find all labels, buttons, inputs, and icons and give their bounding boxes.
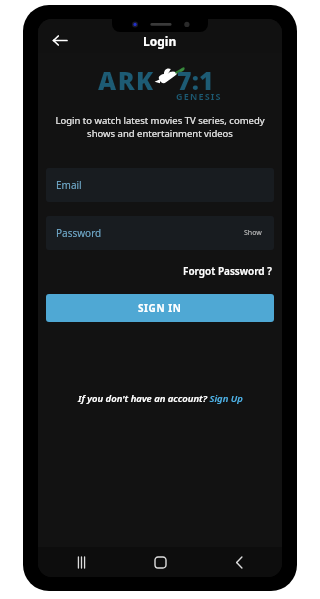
- button[interactable]: Back: [226, 549, 252, 575]
- button[interactable]: Home: [147, 549, 173, 575]
- button[interactable]: Password: [46, 216, 274, 250]
- button[interactable]: If you don't have an account? Sign Up: [74, 388, 247, 409]
- staticText: ARK: [98, 63, 155, 97]
- button[interactable]: Email: [46, 168, 274, 202]
- staticText: GENESIS: [176, 90, 222, 102]
- staticText: Email: [56, 178, 82, 192]
- staticText: Login to watch latest movies TV series, …: [50, 114, 270, 140]
- button[interactable]: Show: [242, 226, 264, 240]
- staticText: If you don't have an account? Sign Up: [78, 392, 243, 405]
- staticText: Show: [244, 228, 262, 238]
- button[interactable]: Recents: [68, 549, 94, 575]
- button[interactable]: Back: [44, 25, 74, 55]
- staticText: SIGN IN: [138, 301, 182, 315]
- staticText: Password: [56, 226, 102, 240]
- staticText: 7:1: [177, 63, 214, 97]
- button[interactable]: Forgot Password ?: [181, 262, 274, 280]
- staticText: Forgot Password ?: [183, 264, 272, 278]
- staticText: Login: [143, 33, 177, 49]
- button[interactable]: SIGN IN: [46, 294, 274, 322]
